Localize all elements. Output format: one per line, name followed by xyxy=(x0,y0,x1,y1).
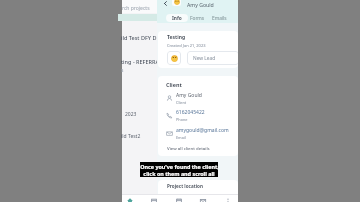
staticText: New Lead xyxy=(193,55,216,62)
staticText: Phone xyxy=(176,117,188,122)
staticText: Testing xyxy=(167,34,186,41)
button[interactable]: Forms xyxy=(187,14,208,22)
staticText: Once you've found the client, xyxy=(140,163,218,170)
button[interactable]: Messages xyxy=(196,195,210,202)
staticText: Client xyxy=(176,100,187,105)
staticText: 2023 xyxy=(125,111,137,118)
staticText: s xyxy=(121,67,124,74)
staticText: Project location xyxy=(167,183,203,189)
staticText: rch projects xyxy=(122,5,150,12)
staticText: click on them and scroll all xyxy=(143,170,215,177)
staticText: View all client details xyxy=(167,145,210,151)
staticText: Created Jan 21, 2023 xyxy=(167,43,206,48)
staticText: ild Test DFY D xyxy=(121,34,157,41)
button[interactable]: Home xyxy=(123,195,137,202)
button[interactable]: View all client details xyxy=(167,145,210,151)
staticText: Client xyxy=(166,81,182,88)
button[interactable]: Calendar xyxy=(172,195,186,202)
staticText: 6162045422 xyxy=(176,109,205,116)
button[interactable]: amygould@gmail.com xyxy=(166,126,238,140)
button[interactable]: More xyxy=(221,195,235,202)
staticText: Forms xyxy=(190,15,205,22)
staticText: ting - REFERRA xyxy=(121,58,160,65)
button[interactable]: 6162045422 xyxy=(166,108,238,122)
button[interactable]: Projects xyxy=(147,195,161,202)
staticText: Info xyxy=(172,15,182,22)
staticText: Amy Gould xyxy=(176,92,202,99)
staticText: ild Test2 xyxy=(121,133,141,140)
button[interactable]: Mood xyxy=(167,51,181,65)
button[interactable]: Back xyxy=(161,0,170,8)
button[interactable]: New Lead xyxy=(187,51,238,65)
staticText: Email xyxy=(176,135,186,140)
button[interactable]: Info xyxy=(166,14,188,22)
staticText: Emails xyxy=(212,15,227,22)
button[interactable]: Amy Gould xyxy=(166,91,238,105)
staticText: Amy Gould xyxy=(187,1,214,8)
staticText: amygould@gmail.com xyxy=(176,127,229,134)
button[interactable]: Emails xyxy=(209,14,230,22)
